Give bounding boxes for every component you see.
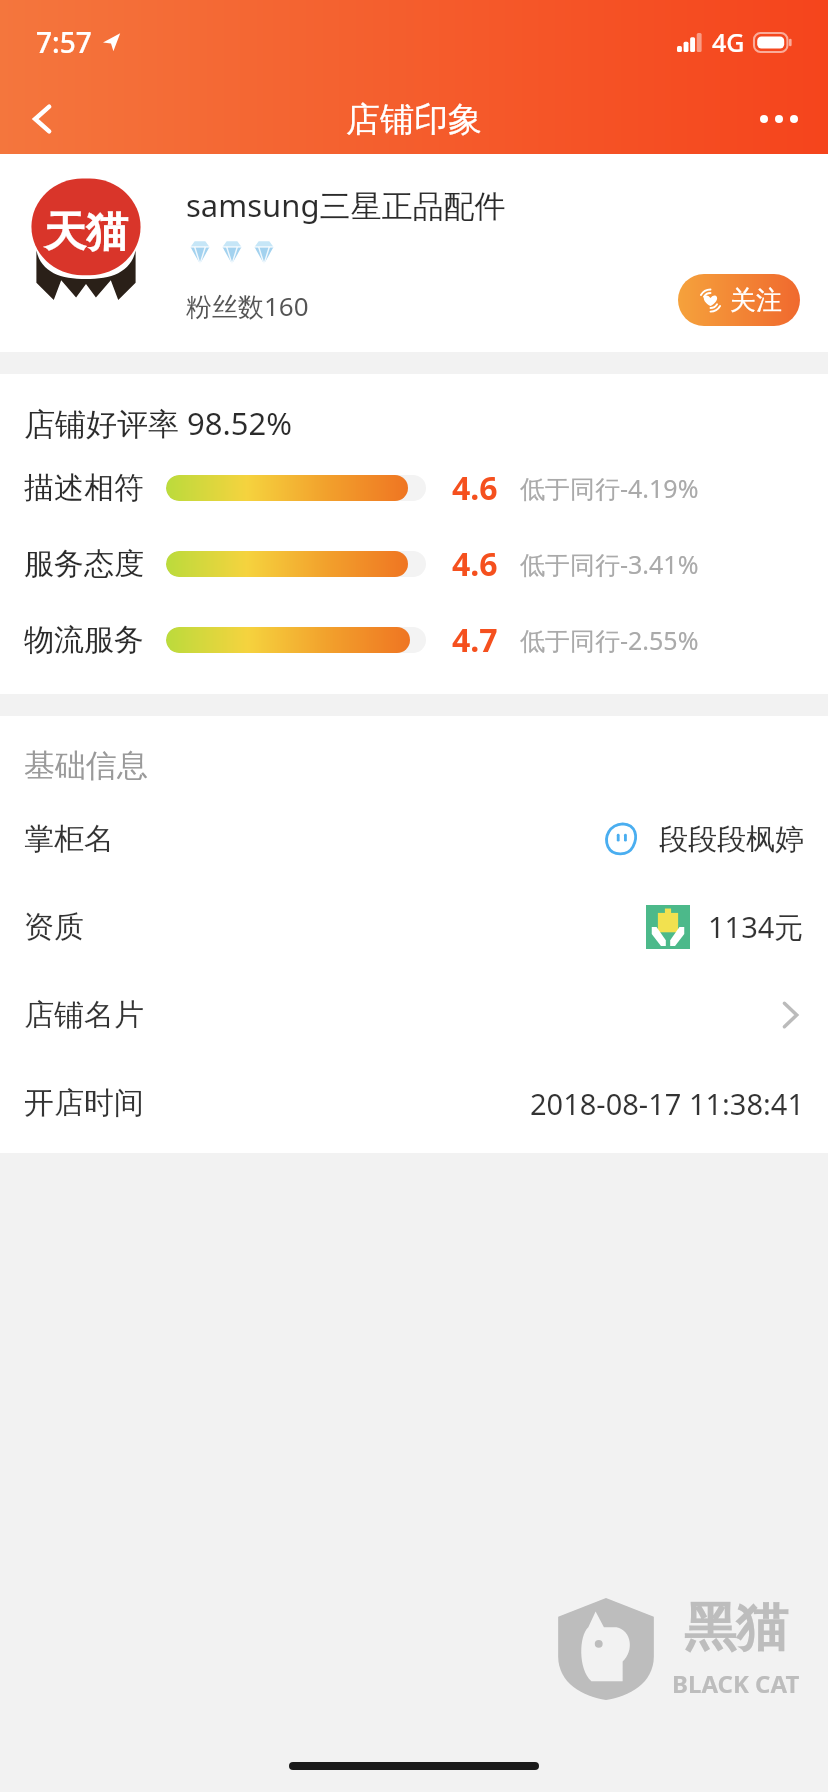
staticText: 粉丝数160 <box>186 288 309 324</box>
staticText: 7:57 <box>36 23 92 61</box>
button[interactable]: Back <box>8 84 78 154</box>
staticText: 店铺印象 <box>346 98 482 141</box>
staticText: 4.6 <box>452 466 498 510</box>
staticText: 低于同行-3.41% <box>520 547 699 581</box>
staticText: 天猫 <box>44 206 128 259</box>
staticText: 低于同行-4.19% <box>520 471 699 505</box>
staticText: 4G <box>712 25 745 59</box>
staticText: 1134元 <box>708 907 804 947</box>
staticText: 基础信息 <box>24 746 148 785</box>
staticText: BLACK CAT <box>672 1667 800 1700</box>
staticText: 4.7 <box>452 618 498 662</box>
staticText: 关注 <box>730 284 782 317</box>
staticText: 黑猫 <box>684 1595 788 1661</box>
staticText: 段段段枫婷 <box>659 821 804 858</box>
button[interactable]: 关注 <box>678 274 800 326</box>
button[interactable]: 店铺名片 <box>0 971 828 1059</box>
staticText: samsung三星正品配件 <box>186 184 506 226</box>
staticText: 掌柜名 <box>24 820 114 858</box>
staticText: 描述相符 <box>24 469 144 507</box>
staticText: 服务态度 <box>24 545 144 583</box>
staticText: 低于同行-2.55% <box>520 623 699 657</box>
staticText: 开店时间 <box>24 1084 144 1122</box>
staticText: 资质 <box>24 908 84 946</box>
staticText: 4.6 <box>452 542 498 586</box>
staticText: 2018-08-17 11:38:41 <box>530 1084 804 1123</box>
staticText: 店铺名片 <box>24 996 144 1034</box>
staticText: 物流服务 <box>24 621 144 659</box>
button[interactable]: More options <box>744 84 814 154</box>
staticText: 店铺好评率 98.52% <box>24 402 293 444</box>
